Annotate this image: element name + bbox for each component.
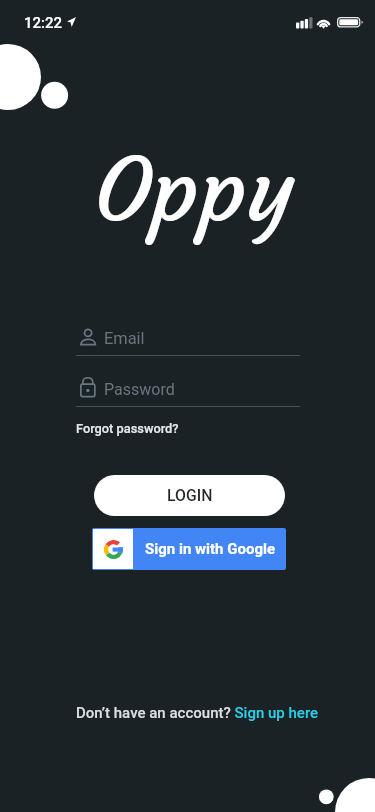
- button[interactable]: Sign in with Google: [92, 528, 286, 570]
- staticText: LOGIN: [167, 486, 213, 505]
- staticText: Don’t have an account? Sign up here: [76, 704, 319, 722]
- button[interactable]: Email: [76, 324, 300, 355]
- button[interactable]: Password: [76, 375, 300, 406]
- staticText: Email: [104, 329, 145, 348]
- staticText: Password: [104, 380, 175, 399]
- button[interactable]: LOGIN: [94, 475, 285, 516]
- button[interactable]: Forgot password?: [76, 420, 179, 437]
- staticText: 12:22: [24, 14, 63, 32]
- staticText: Oppy: [94, 136, 295, 245]
- staticText: Sign in with Google: [145, 540, 276, 558]
- button[interactable]: Don’t have an account? Sign up here: [76, 704, 319, 722]
- staticText: Forgot password?: [76, 421, 179, 436]
